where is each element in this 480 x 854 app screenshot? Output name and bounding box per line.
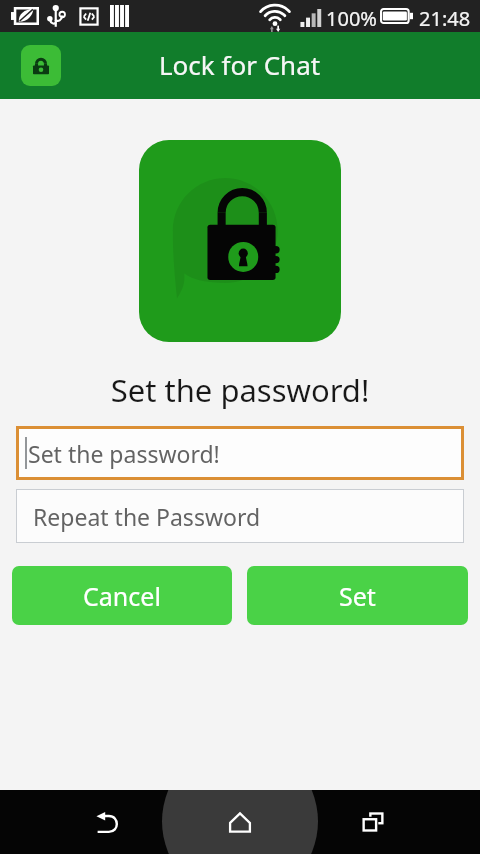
button[interactable]: Cancel <box>12 566 232 625</box>
button[interactable]: Repeat the Password <box>16 489 464 543</box>
button[interactable]: Recent apps <box>331 790 415 854</box>
staticText: Set the password! <box>28 438 220 469</box>
button[interactable]: Home <box>198 790 282 854</box>
staticText: Repeat the Password <box>33 501 261 532</box>
staticText: Lock for Chat <box>159 47 321 82</box>
staticText: 21:48 <box>419 5 471 32</box>
staticText: Set <box>339 579 376 613</box>
button[interactable]: App icon <box>21 45 61 86</box>
button[interactable]: Set the password! <box>16 426 464 480</box>
staticText: Set the password! <box>0 369 480 411</box>
button[interactable]: Back <box>65 790 149 854</box>
staticText: 100% <box>326 5 377 32</box>
button[interactable]: Set <box>247 566 468 625</box>
staticText: Cancel <box>83 579 161 613</box>
